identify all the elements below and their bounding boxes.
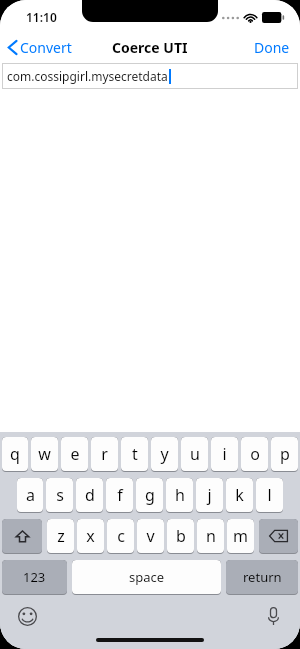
staticText: com.cossipgirl.mysecretdata — [7, 68, 168, 84]
staticText: Coerce UTI — [112, 38, 188, 57]
button[interactable]: n — [197, 519, 224, 554]
staticText: Done — [254, 38, 290, 57]
staticText: q — [10, 443, 20, 465]
staticText: return — [243, 568, 282, 586]
button[interactable]: Emoji — [14, 603, 40, 629]
button[interactable]: y — [151, 437, 178, 472]
staticText: g — [145, 484, 155, 506]
button[interactable]: l — [256, 478, 283, 513]
button[interactable]: Done — [244, 33, 300, 62]
button[interactable]: c — [107, 519, 134, 554]
staticText: l — [267, 484, 272, 506]
button[interactable]: g — [136, 478, 163, 513]
staticText: r — [101, 443, 108, 465]
button[interactable]: o — [241, 437, 268, 472]
staticText: a — [26, 484, 35, 506]
staticText: c — [117, 525, 125, 547]
staticText: k — [235, 484, 244, 506]
button[interactable]: p — [271, 437, 298, 472]
staticText: j — [207, 484, 212, 506]
staticText: x — [86, 525, 95, 547]
staticText: v — [146, 525, 155, 547]
staticText: t — [132, 443, 138, 465]
button[interactable]: z — [47, 519, 74, 554]
staticText: h — [175, 484, 185, 506]
button[interactable]: q — [2, 437, 28, 472]
button[interactable]: k — [226, 478, 253, 513]
button[interactable]: e — [61, 437, 88, 472]
staticText: Convert — [20, 38, 72, 57]
button[interactable]: 123 — [2, 560, 67, 595]
staticText: 123 — [23, 568, 46, 586]
button[interactable]: Backspace — [259, 519, 298, 554]
button[interactable]: j — [196, 478, 223, 513]
button[interactable]: u — [181, 437, 208, 472]
button[interactable]: b — [167, 519, 194, 554]
button[interactable]: h — [166, 478, 193, 513]
button[interactable]: x — [77, 519, 104, 554]
button[interactable]: f — [106, 478, 133, 513]
staticText: m — [233, 525, 248, 547]
button[interactable]: return — [226, 560, 298, 595]
button[interactable]: Shift — [2, 519, 42, 554]
button[interactable]: t — [121, 437, 148, 472]
staticText: u — [190, 443, 200, 465]
button[interactable]: s — [46, 478, 73, 513]
staticText: i — [222, 443, 227, 465]
staticText: p — [280, 443, 290, 465]
staticText: b — [176, 525, 186, 547]
button[interactable]: Convert — [0, 34, 80, 61]
button[interactable]: r — [91, 437, 118, 472]
staticText: z — [57, 525, 65, 547]
staticText: d — [85, 484, 95, 506]
button[interactable]: Dictation — [260, 603, 286, 629]
staticText: w — [38, 443, 51, 465]
staticText: o — [250, 443, 260, 465]
button[interactable]: v — [137, 519, 164, 554]
staticText: s — [56, 484, 64, 506]
staticText: f — [117, 484, 123, 506]
button[interactable]: com.cossipgirl.mysecretdata — [2, 63, 298, 89]
staticText: n — [206, 525, 216, 547]
staticText: 11:10 — [26, 9, 57, 25]
button[interactable]: m — [227, 519, 254, 554]
staticText: e — [70, 443, 80, 465]
button[interactable]: a — [17, 478, 43, 513]
button[interactable]: d — [76, 478, 103, 513]
staticText: y — [160, 443, 169, 465]
button[interactable]: w — [31, 437, 58, 472]
button[interactable]: i — [211, 437, 238, 472]
button[interactable]: space — [72, 560, 221, 595]
staticText: space — [129, 568, 165, 586]
